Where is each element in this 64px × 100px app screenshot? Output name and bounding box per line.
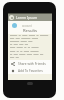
staticText: Share with Friends	[18, 62, 46, 66]
button[interactable]: Share	[8, 60, 52, 67]
button[interactable]: Add to favorites	[8, 67, 52, 74]
staticText: account	[22, 24, 32, 28]
staticText: Add To Favorites	[18, 69, 43, 73]
other: Share	[11, 62, 15, 66]
button[interactable]: Lorem Ipsum	[8, 14, 52, 21]
staticText: Lorem Ipsum	[16, 15, 38, 20]
other: Add to favorites	[11, 69, 15, 73]
staticText: Results	[8, 28, 52, 34]
